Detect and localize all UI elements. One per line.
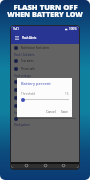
staticText: Flash mode bbox=[21, 80, 36, 84]
staticText: 100% bbox=[69, 27, 77, 31]
button[interactable]: Language bbox=[11, 102, 79, 110]
staticText: Flash settings bbox=[14, 74, 31, 78]
staticText: 15 bbox=[65, 92, 69, 96]
button[interactable]: Notification flash alerts bbox=[11, 44, 79, 52]
staticText: Strength bbox=[14, 111, 25, 115]
staticText: Flash Alerts bbox=[22, 36, 37, 40]
staticText: 9:41 bbox=[13, 27, 19, 31]
button[interactable]: Home bbox=[43, 163, 48, 168]
staticText: FLASH TURN OFF bbox=[13, 2, 78, 12]
button[interactable]: Back bbox=[24, 163, 29, 168]
button[interactable]: Flash timing bbox=[11, 86, 79, 94]
staticText: Battery percent bbox=[21, 96, 40, 100]
staticText: Text alerts bbox=[21, 59, 34, 63]
staticText: Notification flash alerts bbox=[21, 46, 50, 50]
staticText: Flash / Call alerts bbox=[14, 53, 35, 57]
staticText: Threshold bbox=[21, 92, 36, 96]
button[interactable]: Text alerts bbox=[11, 57, 79, 65]
staticText: Flash pattern bbox=[14, 123, 31, 127]
button[interactable]: Recents bbox=[61, 163, 66, 168]
button[interactable]: Flash mode bbox=[11, 78, 79, 86]
button[interactable]: Cancel bbox=[45, 110, 57, 114]
button[interactable]: Battery percent bbox=[11, 94, 79, 102]
button[interactable]: Menu bbox=[14, 35, 20, 41]
staticText: Battery percent bbox=[21, 81, 51, 86]
button[interactable]: Phone calls bbox=[11, 65, 79, 73]
button[interactable]: Save bbox=[60, 110, 69, 114]
staticText: WHEN BATTERY LOW bbox=[7, 9, 83, 19]
staticText: Phone calls bbox=[21, 67, 35, 71]
